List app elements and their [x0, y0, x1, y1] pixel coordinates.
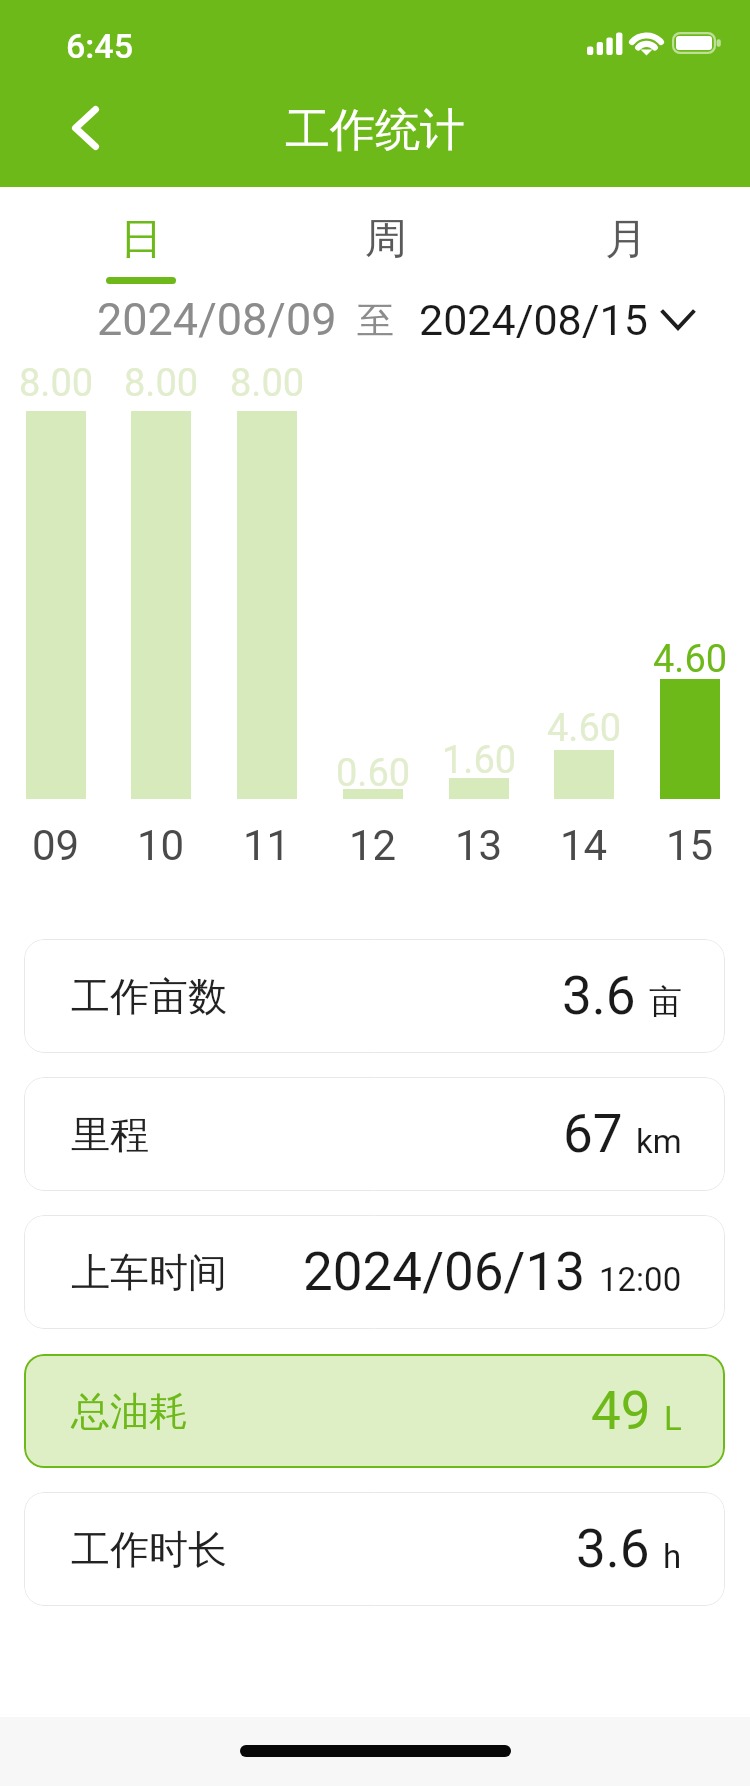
staticText: 14	[560, 821, 608, 870]
staticText: 2024/08/09	[97, 293, 337, 346]
staticText: 4.60	[547, 706, 622, 751]
staticText: 12	[349, 821, 397, 870]
staticText: 8.00	[19, 361, 94, 406]
button[interactable]: Back	[45, 88, 125, 168]
staticText: 工作统计	[285, 102, 465, 159]
staticText: 2024/06/13	[303, 1241, 586, 1303]
button[interactable]: 周	[326, 187, 446, 287]
staticText: 11	[243, 821, 291, 870]
staticText: 0.60	[336, 751, 411, 796]
staticText: 4.60	[653, 637, 728, 682]
button[interactable]: 总油耗	[24, 1354, 725, 1468]
staticText: 日	[120, 213, 162, 266]
staticText: 3.6	[576, 1518, 650, 1580]
staticText: 月	[605, 213, 647, 266]
staticText: 13	[455, 821, 503, 870]
staticText: 12:00	[599, 1260, 682, 1299]
staticText: h	[663, 1537, 682, 1576]
staticText: 上车时间	[71, 1248, 227, 1297]
staticText: 15	[666, 821, 714, 870]
staticText: 工作时长	[71, 1525, 227, 1574]
button[interactable]: 工作亩数	[24, 939, 725, 1053]
staticText: 09	[32, 821, 80, 870]
button[interactable]: 里程	[24, 1077, 725, 1191]
staticText: 1.60	[442, 738, 517, 783]
button[interactable]: 日	[81, 187, 201, 287]
button[interactable]: 上车时间	[24, 1215, 725, 1329]
staticText: 总油耗	[71, 1387, 188, 1436]
button[interactable]: 月	[566, 187, 686, 287]
staticText: L	[664, 1399, 682, 1438]
staticText: 2024/08/15	[419, 295, 648, 345]
staticText: 里程	[71, 1110, 149, 1159]
staticText: 10	[137, 821, 185, 870]
staticText: 49	[591, 1380, 651, 1442]
staticText: km	[636, 1122, 682, 1161]
staticText: 8.00	[230, 361, 305, 406]
staticText: 亩	[649, 981, 682, 1023]
staticText: 67	[563, 1103, 623, 1165]
staticText: 3.6	[562, 965, 636, 1027]
staticText: 6:45	[66, 26, 133, 66]
staticText: 工作亩数	[71, 972, 227, 1021]
button[interactable]: 工作时长	[24, 1492, 725, 1606]
staticText: 8.00	[124, 361, 199, 406]
button[interactable]: Choose date range	[660, 297, 696, 343]
staticText: 至	[357, 297, 394, 344]
staticText: 周	[365, 213, 407, 266]
